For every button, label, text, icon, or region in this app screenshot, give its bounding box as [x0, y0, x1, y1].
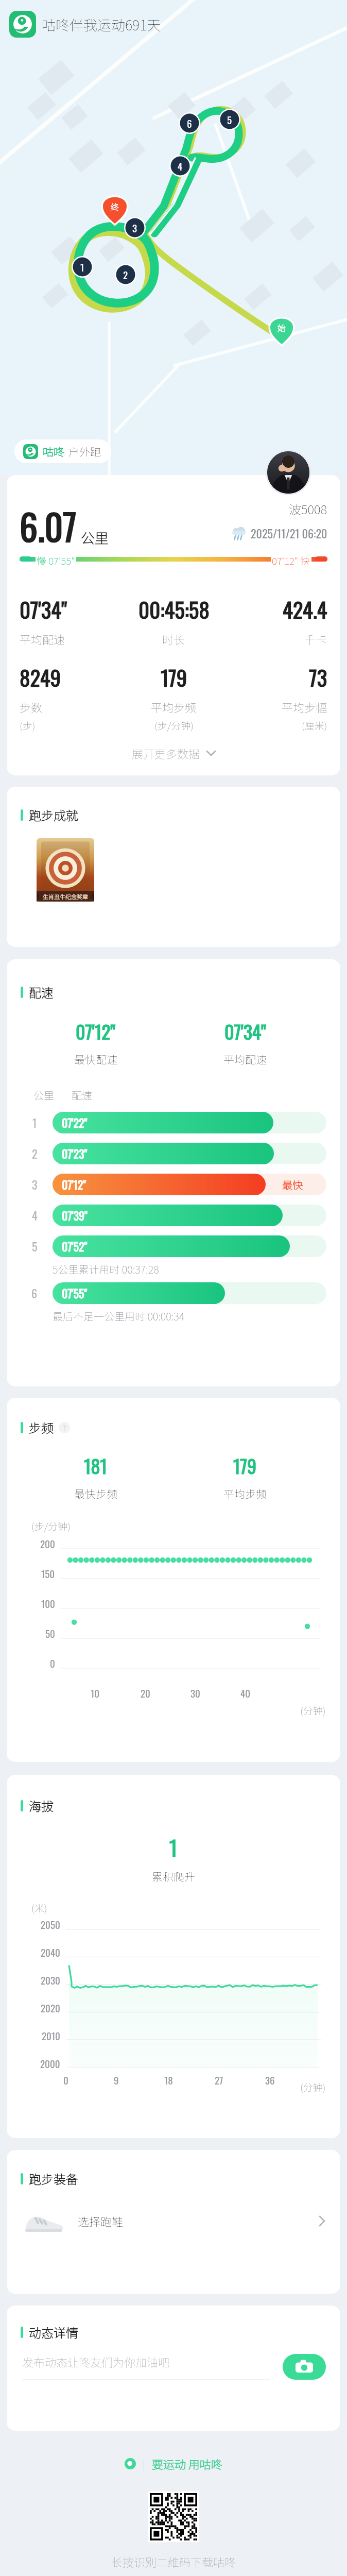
staticText: 07'12" 快: [272, 553, 310, 565]
staticText: 50: [45, 1626, 55, 1640]
staticText: 73: [309, 662, 327, 693]
button[interactable]: User avatar: [267, 451, 309, 494]
staticText: 5公里累计用时 00:37:28: [53, 1262, 159, 1277]
staticText: 2: [32, 1145, 38, 1162]
staticText: 最快步频: [74, 1486, 117, 1501]
staticText: 2000: [40, 2056, 60, 2071]
staticText: 2: [123, 267, 128, 282]
staticText: 1: [80, 260, 84, 274]
staticText: 07'12": [62, 1176, 86, 1193]
staticText: 3: [132, 221, 137, 235]
staticText: 18: [164, 2073, 173, 2087]
staticText: 时长: [162, 631, 185, 647]
staticText: 0: [50, 1656, 55, 1670]
staticText: 07'34": [224, 1018, 266, 1045]
staticText: 2020: [41, 2001, 60, 2015]
staticText: 动态详情: [29, 2323, 78, 2341]
staticText: 步数: [20, 699, 43, 715]
staticText: 选择跑鞋: [78, 2213, 124, 2229]
staticText: (分钟): [300, 2080, 326, 2094]
staticText: (厘米): [302, 718, 327, 733]
staticText: 6: [187, 116, 192, 130]
staticText: 平均配速: [223, 1052, 267, 1067]
staticText: 终: [111, 200, 119, 212]
button[interactable]: Help: [59, 1422, 70, 1433]
staticText: 100: [41, 1596, 55, 1611]
staticText: 公里: [33, 1088, 54, 1103]
staticText: 咕咚: [43, 444, 64, 459]
staticText: 179: [233, 1452, 257, 1479]
staticText: 5: [32, 1238, 38, 1255]
staticText: 3: [32, 1176, 38, 1193]
staticText: 07'22": [62, 1114, 88, 1131]
staticText: 2030: [41, 1973, 60, 1987]
staticText: 07'39": [62, 1207, 88, 1224]
staticText: 1: [169, 1832, 178, 1862]
staticText: 生肖丑牛纪念奖章: [43, 892, 88, 901]
button[interactable]: 展开更多数据: [7, 741, 340, 766]
staticText: 慢 07'55": [37, 553, 75, 565]
staticText: 07'12": [76, 1018, 116, 1045]
staticText: 2050: [41, 1917, 60, 1931]
button[interactable]: 选择跑鞋: [7, 2199, 340, 2243]
staticText: 20: [141, 1686, 150, 1700]
staticText: 公里: [81, 528, 109, 548]
staticText: 户外跑: [68, 444, 101, 459]
staticText: 始: [277, 321, 286, 333]
staticText: |: [143, 2456, 145, 2471]
staticText: 150: [41, 1566, 55, 1581]
staticText: 波5008: [289, 500, 327, 518]
staticText: 07'52": [62, 1238, 88, 1255]
staticText: 5: [227, 112, 232, 127]
staticText: 长按识别二维码下载咕咚: [111, 2553, 236, 2570]
staticText: 平均步频: [223, 1486, 267, 1501]
staticText: 0: [63, 2073, 68, 2087]
staticText: (米): [31, 1901, 47, 1915]
staticText: 07'23": [62, 1145, 88, 1162]
staticText: 咕咚伴我运动691天: [42, 14, 161, 35]
staticText: 2010: [42, 2028, 60, 2043]
staticText: 配速: [72, 1088, 92, 1103]
staticText: 1: [32, 1114, 37, 1131]
button[interactable]: Camera: [283, 2354, 326, 2380]
button[interactable]: 发布动态让咚友们为你加油吧: [22, 2353, 270, 2380]
staticText: 发布动态让咚友们为你加油吧: [22, 2353, 170, 2370]
button[interactable]: 咕咚: [14, 439, 111, 463]
staticText: (步): [20, 718, 36, 733]
staticText: 10: [91, 1686, 100, 1700]
staticText: 00:45:58: [138, 594, 210, 625]
staticText: 07'55": [62, 1285, 88, 1302]
staticText: 展开更多数据: [132, 745, 200, 761]
staticText: 4: [32, 1207, 38, 1224]
staticText: 9: [114, 2073, 119, 2087]
staticText: 平均步频: [151, 699, 197, 715]
staticText: 424.4: [283, 594, 327, 625]
staticText: 最快: [282, 1177, 303, 1192]
staticText: 6: [31, 1285, 38, 1302]
staticText: 27: [215, 2073, 223, 2087]
staticText: 最后不足一公里用时 00:00:34: [53, 1309, 185, 1324]
staticText: (步/分钟): [31, 1519, 71, 1533]
staticText: 07'34": [20, 594, 67, 625]
staticText: 最快配速: [74, 1052, 117, 1067]
staticText: 40: [240, 1686, 251, 1700]
staticText: 36: [265, 2073, 275, 2087]
staticText: 千卡: [304, 631, 327, 647]
staticText: 179: [161, 662, 187, 693]
staticText: 8249: [20, 662, 61, 693]
button[interactable]: 生肖丑牛纪念奖章: [37, 838, 94, 906]
staticText: 平均步幅: [282, 699, 327, 715]
staticText: 跑步装备: [29, 2170, 78, 2188]
staticText: 6.07: [20, 499, 77, 552]
staticText: 2025/11/21 06:20: [251, 525, 327, 542]
staticText: (分钟): [300, 1703, 326, 1718]
staticText: 累积爬升: [152, 1869, 195, 1884]
staticText: 海拔: [29, 1797, 54, 1815]
staticText: 200: [40, 1536, 55, 1551]
staticText: 配速: [29, 983, 54, 1001]
staticText: 181: [84, 1452, 108, 1479]
staticText: 步频: [29, 1418, 54, 1436]
staticText: 要运动 用咕咚: [152, 2455, 222, 2472]
staticText: 30: [190, 1686, 200, 1700]
staticText: (步/分钟): [154, 718, 194, 733]
